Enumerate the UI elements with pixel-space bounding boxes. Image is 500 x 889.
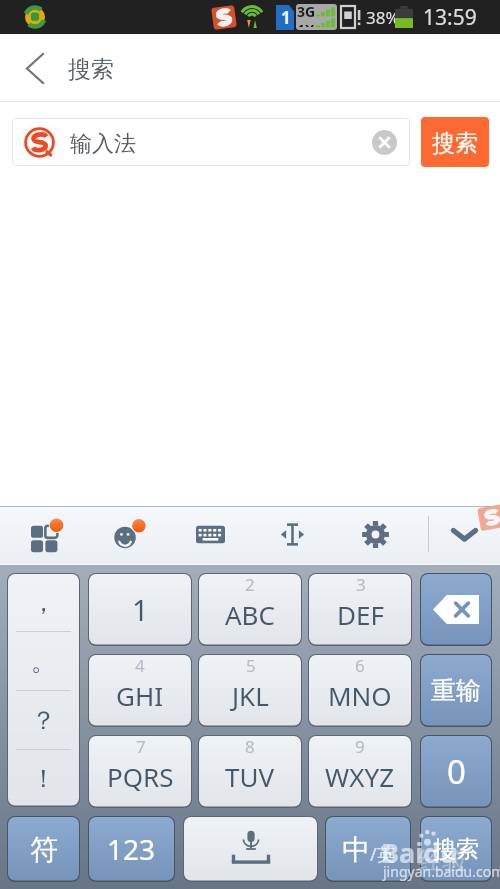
button[interactable]: 搜索 <box>421 117 489 167</box>
button[interactable]: Backspace <box>420 573 492 646</box>
staticText: ， <box>31 587 56 618</box>
staticText: 1 <box>281 6 291 29</box>
staticText: 经验 <box>418 846 466 876</box>
staticText: DEF <box>337 597 384 632</box>
staticText: JKL <box>232 678 269 713</box>
staticText: MNO <box>328 678 392 713</box>
button[interactable]: Clear text <box>372 130 397 155</box>
staticText: GHI <box>116 678 164 713</box>
staticText: 搜索 <box>432 129 478 158</box>
staticText: 。 <box>31 646 56 677</box>
staticText: 8 <box>245 735 255 758</box>
staticText: /英 <box>370 842 395 867</box>
staticText: 2 <box>245 573 255 596</box>
button[interactable] <box>183 816 318 882</box>
staticText: 1X <box>297 20 315 27</box>
button[interactable]: Emoji <box>105 511 151 557</box>
staticText: 9 <box>355 735 365 758</box>
button[interactable]: 输入法 <box>12 118 410 166</box>
staticText: 3G <box>297 4 316 21</box>
staticText: 13:59 <box>423 3 477 32</box>
button[interactable]: Hide keyboard <box>441 511 487 557</box>
button[interactable]: 重输 <box>420 654 492 727</box>
staticText: 4 <box>135 654 145 677</box>
button[interactable]: 9 <box>308 735 412 808</box>
button[interactable]: 1 <box>88 573 192 646</box>
staticText: Baidu <box>381 834 458 871</box>
button[interactable]: 3 <box>308 573 412 646</box>
staticText: 1 <box>132 590 149 629</box>
button[interactable]: ， <box>7 573 80 807</box>
staticText: 38% <box>366 6 400 29</box>
staticText: WXYZ <box>325 759 395 794</box>
staticText: PQRS <box>107 759 174 794</box>
staticText: 123 <box>107 830 156 868</box>
button[interactable]: 中 <box>325 816 411 882</box>
staticText: 0 <box>447 749 466 794</box>
staticText: 6 <box>355 654 365 677</box>
staticText: 重输 <box>431 675 481 706</box>
staticText: TUV <box>225 759 275 794</box>
staticText: 输入法 <box>70 130 136 158</box>
button[interactable]: Move cursor <box>269 511 315 557</box>
button[interactable]: 8 <box>198 735 302 808</box>
button[interactable]: Settings <box>352 511 398 557</box>
staticText: 符 <box>30 832 58 867</box>
button[interactable]: Back <box>8 41 62 95</box>
staticText: 3 <box>356 573 366 596</box>
staticText: 5 <box>246 654 256 677</box>
button[interactable]: 7 <box>88 735 192 808</box>
button[interactable]: 6 <box>308 654 412 727</box>
staticText: 中 <box>342 832 370 867</box>
staticText: 搜索 <box>68 55 114 84</box>
button[interactable]: Switch keyboard <box>187 511 233 557</box>
button[interactable]: Themes <box>22 511 68 557</box>
staticText: ABC <box>225 597 275 632</box>
button[interactable]: 4 <box>88 654 192 727</box>
button[interactable]: 符 <box>7 816 80 882</box>
staticText: 搜索 <box>433 835 479 864</box>
button[interactable]: 2 <box>198 573 302 646</box>
staticText: ？ <box>31 705 56 736</box>
button[interactable]: 0 <box>420 735 492 808</box>
button[interactable]: 搜索 <box>420 816 492 882</box>
staticText: jingyan.baidu.com <box>383 862 500 881</box>
staticText: ！ <box>31 763 56 794</box>
button[interactable]: 5 <box>198 654 302 727</box>
staticText: 7 <box>136 735 146 758</box>
button[interactable]: 123 <box>88 816 175 882</box>
